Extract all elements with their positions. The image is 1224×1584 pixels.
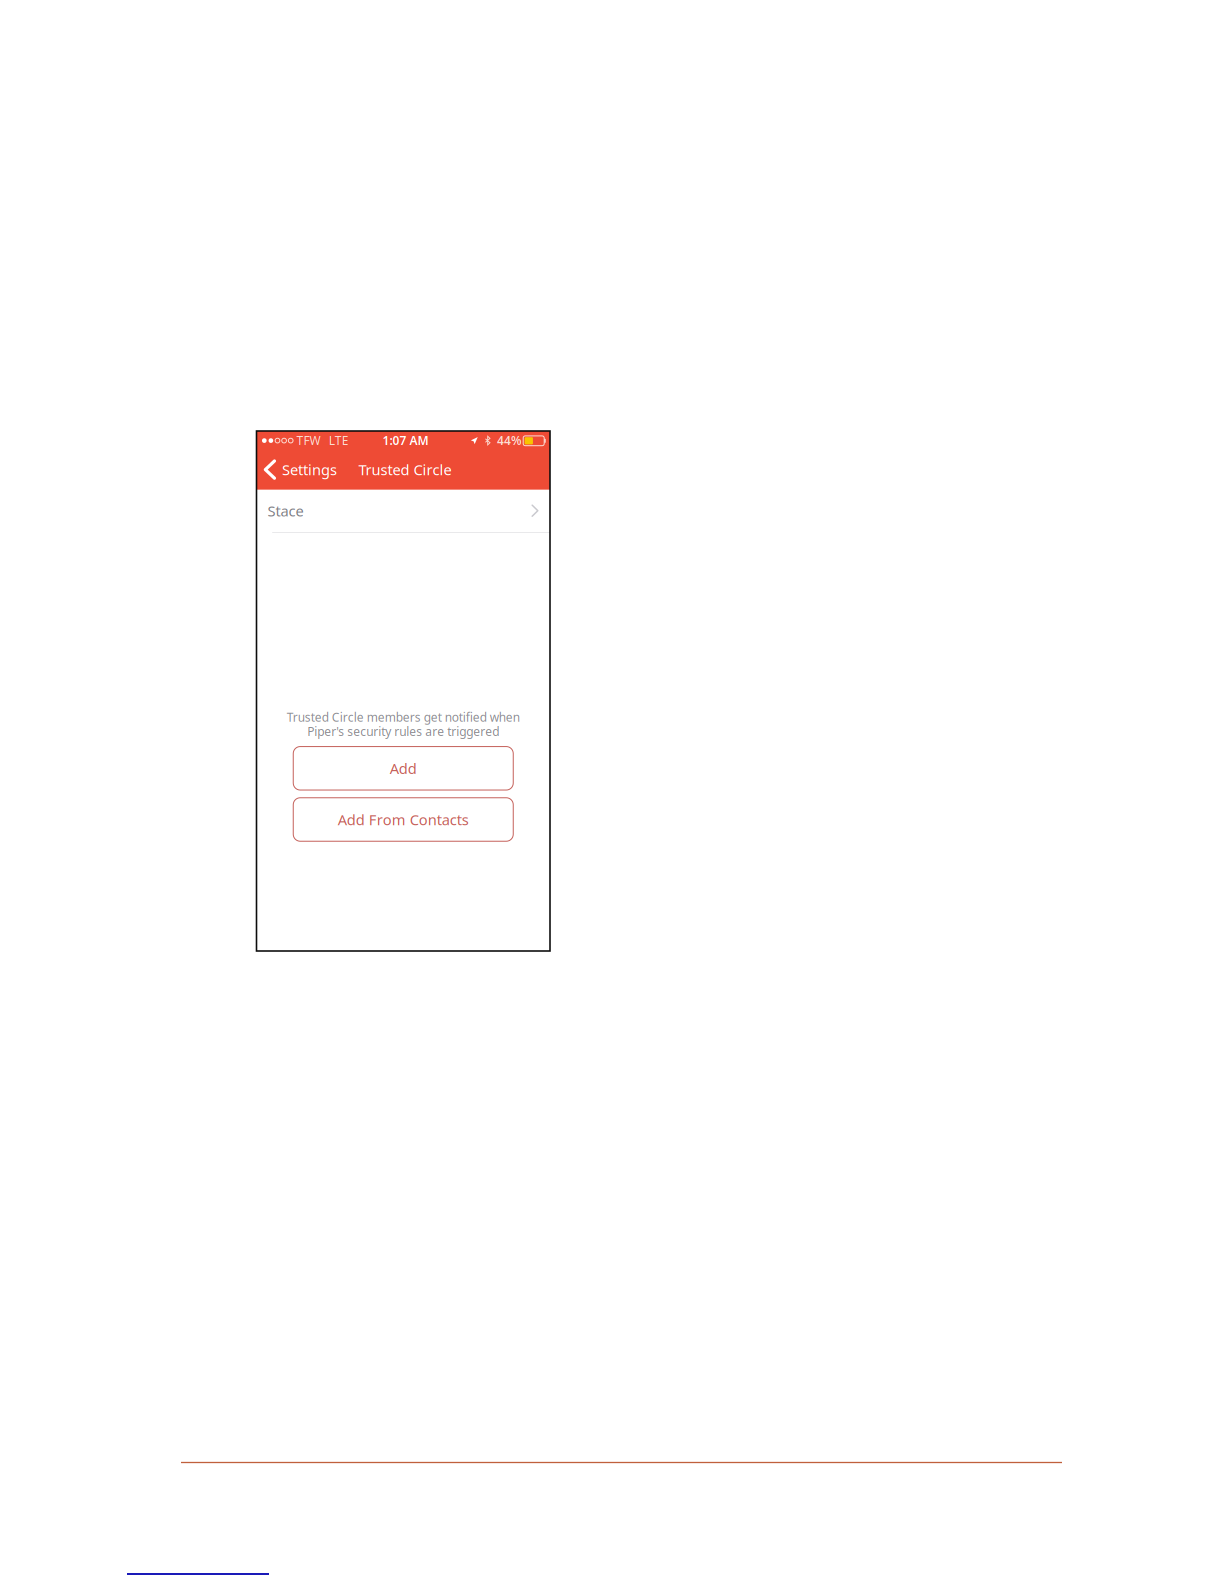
staticText: Settings [282,460,337,479]
staticText: 44% [497,432,522,448]
staticText: Stace [267,501,303,520]
button[interactable]: Stace [256,490,550,533]
staticText: Add From Contacts [338,810,469,829]
staticText: Piper's security rules are triggered [307,723,499,739]
staticText: Add [390,759,417,778]
staticText: 1:07 AM [382,432,428,448]
button[interactable]: Add From Contacts [293,798,513,841]
staticText: Trusted Circle members get notified when [287,709,520,725]
staticText: TFW [296,432,320,448]
button[interactable]: Add [293,746,513,790]
staticText: Trusted Circle [359,460,452,479]
staticText: LTE [329,432,349,448]
button[interactable]: Back to Settings [256,449,344,490]
